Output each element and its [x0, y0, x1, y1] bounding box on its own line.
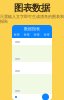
staticText: 只需输入文字即可生成漂亮的图表和报告 [0, 14, 64, 24]
staticText: 标签 [24, 33, 30, 36]
staticText: 标签 [34, 33, 40, 36]
staticText: 数据报表 [24, 26, 40, 31]
staticText: 图表数据 [14, 2, 50, 14]
staticText: 标签 [14, 33, 20, 36]
staticText: 标签 [44, 33, 50, 36]
